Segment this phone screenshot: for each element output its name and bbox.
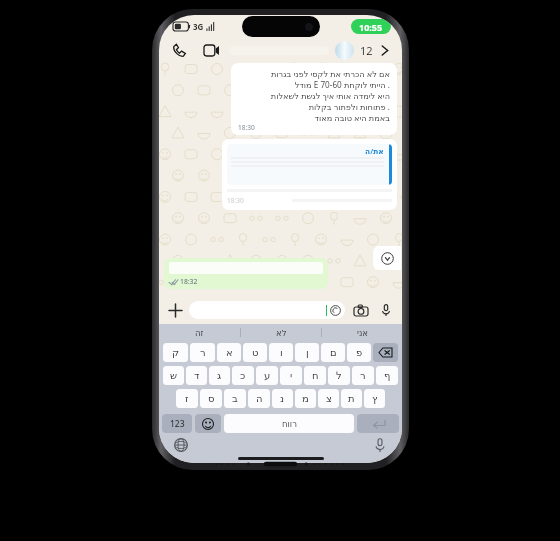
button[interactable]: נ [272,389,293,408]
button[interactable]: ס [200,389,222,408]
button[interactable]: 123 [162,414,192,433]
staticText: ג [217,370,222,382]
staticText: ז [185,393,189,405]
staticText: 12 [360,43,373,58]
button[interactable]: Change keyboard [171,435,191,454]
button[interactable]: ה [248,389,270,408]
button[interactable]: פ [347,343,371,362]
button[interactable]: ד [186,366,207,385]
staticText: ל [336,370,342,382]
button[interactable]: ג [209,366,230,385]
staticText: ת [348,393,355,405]
button[interactable]: כ [232,366,254,385]
staticText: ד [194,370,200,382]
staticText: ח [312,370,319,382]
staticText: באמת היא טובה מאוד [314,112,390,123]
staticText: פ [356,347,363,359]
button[interactable]: א [217,343,241,362]
button[interactable]: ע [256,366,278,385]
staticText: צ [326,393,332,405]
staticText: זה [195,328,204,338]
button[interactable]: Video call [201,40,221,60]
button[interactable]: ן [295,343,319,362]
button[interactable]: אם לא הכרתי את לקסי לפני בגרות [231,63,397,135]
staticText: היא לימדה אותי איך לגשת לשאלות [270,90,390,101]
button[interactable]: ר [190,343,215,362]
staticText: את/ה [365,146,384,156]
button[interactable]: י [280,366,302,385]
button[interactable]: Emoji [195,414,221,433]
button[interactable]: לא [241,324,321,341]
staticText: 18:32 [180,277,198,286]
button[interactable]: ר [352,366,374,385]
button[interactable]: את/ה [222,139,397,210]
staticText: 123 [170,418,185,430]
button[interactable]: רווח [224,414,354,433]
button[interactable]: Enter [357,414,399,433]
staticText: ף [384,370,391,382]
button[interactable] [189,301,345,319]
button[interactable]: צ [318,389,339,408]
button[interactable]: מ [295,389,316,408]
staticText: ש [170,370,178,382]
staticText: לא [276,328,287,338]
button[interactable]: ש [163,366,184,385]
button[interactable]: ח [304,366,326,385]
button[interactable]: ט [243,343,267,362]
staticText: אם לא הכרתי את לקסי לפני בגרות [271,68,390,79]
staticText: 18:30 [227,196,244,205]
button[interactable]: Voice message [377,301,395,319]
button[interactable]: 18:32 [164,258,328,289]
staticText: אני [357,328,368,338]
button[interactable]: ץ [364,389,385,408]
staticText: ס [208,393,215,405]
staticText: 3G [193,21,204,32]
staticText: ץ [372,393,378,405]
staticText: ר [200,347,206,359]
button[interactable]: ק [163,343,188,362]
button[interactable]: Voice call [169,40,189,60]
staticText: א [226,347,233,359]
staticText: מודל E הייתי לוקחת 70-60 . [294,79,390,90]
button[interactable]: ב [224,389,246,408]
staticText: ק [172,347,180,359]
staticText: ע [264,370,271,382]
staticText: ב [232,393,238,405]
button[interactable]: ם [321,343,345,362]
button[interactable]: ת [341,389,362,408]
staticText: 10:55 [359,21,383,33]
staticText: ן [306,347,309,359]
staticText: 18:30 [238,123,255,132]
button[interactable]: ו [269,343,293,362]
button[interactable]: Open [376,42,392,58]
button[interactable]: ל [328,366,350,385]
button[interactable]: ף [376,366,398,385]
staticText: פתוחות ולפתור בקלות . [308,101,390,112]
button[interactable]: אני [322,324,402,341]
button[interactable]: Contact avatar [335,41,354,60]
staticText: רווח [282,419,297,429]
staticText: ר [360,370,366,382]
staticText: ט [252,347,259,359]
button[interactable]: Attach [166,301,184,319]
staticText: כ [240,370,246,382]
button[interactable]: ז [176,389,198,408]
button[interactable]: זה [159,324,240,341]
staticText: ה [256,393,263,405]
button[interactable]: Camera [351,300,371,320]
staticText: ו [280,347,283,359]
button[interactable]: Dictate [370,435,390,454]
button[interactable]: Backspace [373,343,398,362]
staticText: נ [280,393,285,405]
staticText: י [290,370,293,382]
button[interactable]: Scroll to bottom [373,246,401,270]
staticText: ם [330,347,337,359]
staticText: מ [302,393,309,405]
